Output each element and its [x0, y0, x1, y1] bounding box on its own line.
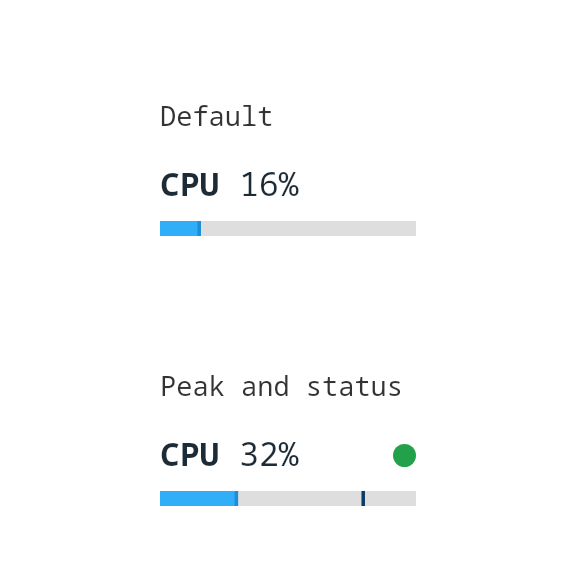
staticText: CPU 32% [160, 431, 299, 476]
button[interactable]: CPU usage bar [160, 221, 416, 236]
staticText: CPU 16% [160, 161, 299, 206]
button[interactable]: Status indicator: healthy [393, 444, 416, 467]
button[interactable]: CPU usage bar [160, 491, 416, 506]
staticText: Default [160, 97, 274, 134]
staticText: Peak and status [160, 367, 403, 404]
